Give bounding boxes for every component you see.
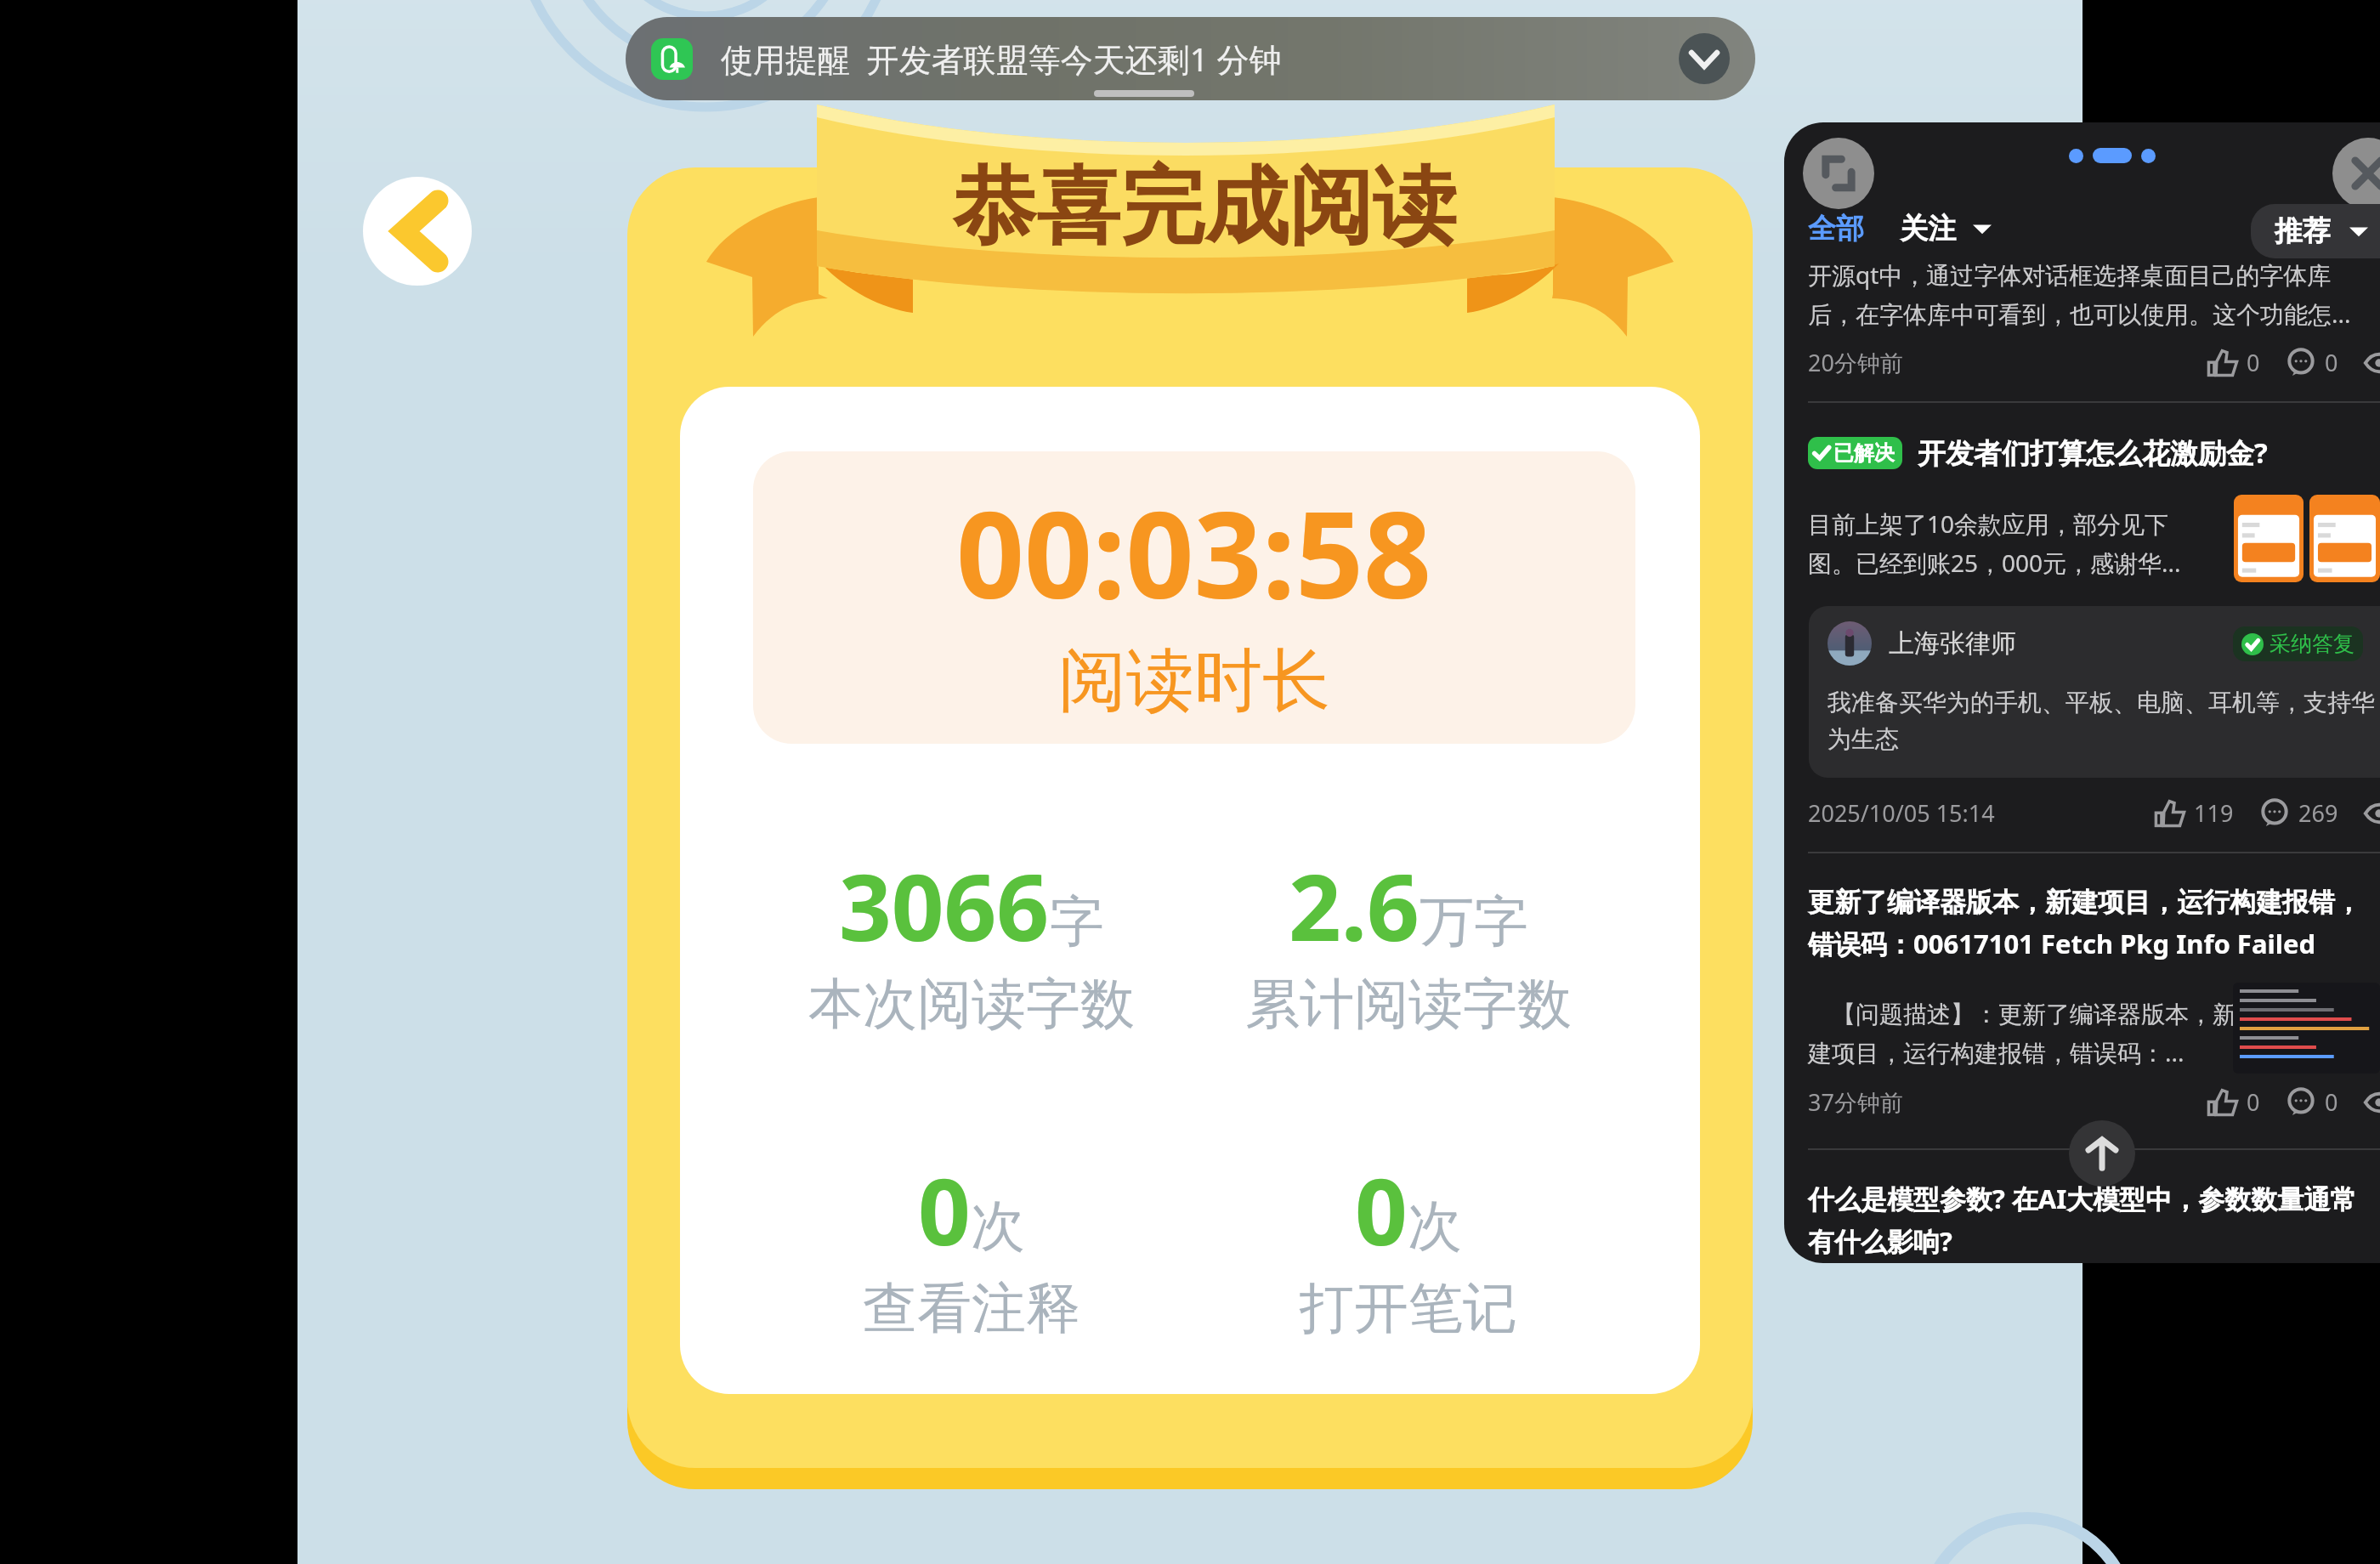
staticText: 采纳答复 [2269,631,2354,657]
button[interactable] [1784,250,2380,401]
staticText: 0 [2247,347,2260,378]
staticText: 有什么影响? [1808,1223,1952,1259]
button[interactable]: 上海张律师 [1809,606,2380,778]
staticText: 37分钟前 [1808,1086,1903,1118]
staticText: 本次阅读字数 [808,970,1135,1039]
staticText: 图。已经到账25，000元，感谢华... [1808,547,2181,579]
staticText: 3066 [839,843,1050,968]
button[interactable]: Scroll to top [2069,1120,2135,1187]
button[interactable]: 全部 [1808,211,1864,246]
staticText: 字 [1050,887,1104,956]
button[interactable]: 3066 [753,843,1190,1039]
button[interactable]: Expand notification [1679,33,1730,84]
staticText: 我准备买华为的手机、平板、电脑、耳机等，支持华 [1827,688,2375,717]
staticText: 2.6 [1289,843,1419,968]
staticText: 累计阅读字数 [1245,970,1572,1039]
staticText: 269 [2298,797,2338,829]
staticText: 更新了编译器版本，新建项目，运行构建报错， [1808,886,2361,919]
staticText: 目前上架了10余款应用，部分见下 [1808,507,2169,540]
staticText: 已解决 [1833,440,1895,466]
staticText: 错误码：00617101 Fetch Pkg Info Failed [1808,926,2316,961]
staticText: 0 [2325,1086,2338,1118]
staticText: 使用提醒 开发者联盟等今天还剩1 分钟 [721,37,1282,81]
staticText: 上海张律师 [1889,627,2016,660]
button[interactable]: 推荐 [2251,204,2380,258]
button[interactable] [1784,1155,2380,1257]
staticText: 119 [2194,797,2234,829]
staticText: 次 [1408,1192,1462,1261]
staticText: 查看注释 [863,1274,1080,1343]
staticText: 0 [2325,347,2338,378]
staticText: 0 [1355,1147,1408,1272]
staticText: 2025/10/05 15:14 [1808,797,1995,829]
staticText: 【问题描述】：更新了编译器版本，新 [1808,997,2236,1029]
button[interactable]: 使用提醒 开发者联盟等今天还剩1 分钟 [626,17,1755,100]
button[interactable] [1784,411,2380,852]
staticText: 后，在字体库中可看到，也可以使用。这个功能怎... [1808,297,2351,330]
staticText: 次 [971,1192,1025,1261]
staticText: 00:03:58 [956,471,1432,633]
button[interactable] [1784,865,2380,1146]
button[interactable]: 0 [1190,1147,1627,1343]
button[interactable]: 2.6 [1190,843,1627,1039]
button[interactable]: 0 [753,1147,1190,1343]
staticText: 打开笔记 [1300,1274,1517,1343]
staticText: 建项目，运行构建报错，错误码：... [1808,1036,2184,1068]
staticText: 恭喜完成阅读 [952,155,1457,261]
staticText: 什么是模型参数? 在AI大模型中，参数数量通常 [1808,1181,2357,1216]
button[interactable]: Resize window [1803,138,1874,209]
staticText: 20分钟前 [1808,347,1903,378]
staticText: 0 [2247,1086,2260,1118]
button[interactable]: 关注 [1900,211,1992,246]
staticText: 阅读时长 [1058,638,1330,724]
staticText: 0 [918,1147,971,1272]
staticText: 开源qt中，通过字体对话框选择桌面目己的字体库 [1808,258,2332,291]
staticText: 关注 [1900,211,1956,246]
staticText: 开发者们打算怎么花激励金? [1918,433,2268,472]
staticText: 推荐 [2275,213,2331,249]
staticText: 万字 [1419,887,1528,956]
button[interactable]: Back [363,177,472,286]
staticText: 为生态 [1827,724,1899,754]
button[interactable]: Close [2332,138,2380,209]
